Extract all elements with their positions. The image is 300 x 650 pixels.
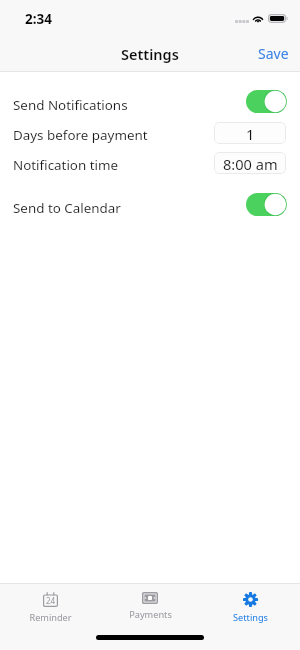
- button[interactable]: Send Notifications: [0, 89, 300, 117]
- button[interactable]: Toggle setting: [246, 193, 287, 216]
- button[interactable]: Days before payment: [0, 119, 300, 147]
- button[interactable]: 24: [0, 583, 100, 624]
- staticText: Save: [258, 44, 289, 63]
- staticText: Settings: [233, 611, 268, 624]
- staticText: Notification time: [13, 156, 119, 174]
- button[interactable]: Settings: [200, 583, 300, 624]
- button[interactable]: Toggle setting: [246, 90, 287, 113]
- staticText: Send Notifications: [13, 96, 128, 114]
- staticText: Send to Calendar: [13, 199, 121, 217]
- staticText: Payments: [129, 608, 172, 621]
- staticText: 1: [246, 124, 255, 144]
- staticText: 2:34: [25, 10, 52, 28]
- button[interactable]: 1: [214, 122, 286, 144]
- staticText: 24: [46, 595, 56, 606]
- staticText: 8:00 am: [223, 154, 278, 174]
- button[interactable]: Send to Calendar: [0, 192, 300, 220]
- staticText: Reminder: [29, 611, 72, 624]
- staticText: Settings: [121, 44, 179, 64]
- staticText: Days before payment: [13, 126, 148, 144]
- button[interactable]: Save: [246, 39, 300, 68]
- button[interactable]: 8:00 am: [214, 152, 286, 174]
- button[interactable]: Payments: [100, 583, 200, 621]
- button[interactable]: Notification time: [0, 149, 300, 177]
